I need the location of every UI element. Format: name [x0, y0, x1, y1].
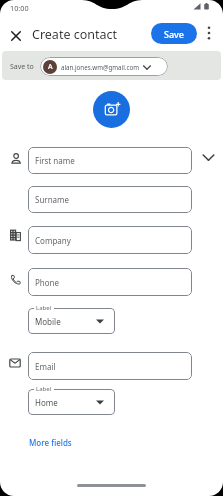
button[interactable]: Mobile	[28, 308, 115, 334]
staticText: Create contact	[32, 26, 118, 43]
staticText: Save	[164, 28, 185, 40]
button[interactable]: Company	[28, 226, 192, 254]
button[interactable]	[203, 25, 215, 41]
button[interactable]: Phone	[28, 268, 192, 296]
button[interactable]: More fields	[29, 437, 72, 448]
button[interactable]: Surname	[28, 186, 192, 213]
staticText: Phone	[35, 277, 60, 288]
staticText: Home	[35, 397, 58, 408]
staticText: A	[48, 62, 53, 72]
staticText: Mobile	[35, 316, 61, 327]
button[interactable]: Save	[151, 23, 197, 44]
staticText: Company	[35, 235, 71, 246]
button[interactable]: First name	[28, 147, 192, 174]
staticText: Surname	[35, 194, 70, 205]
staticText: Label	[36, 304, 52, 312]
staticText: 10:00	[10, 3, 29, 13]
button[interactable]	[7, 27, 25, 45]
button[interactable]: Email	[28, 352, 192, 380]
staticText: Save to	[10, 62, 34, 72]
staticText: Label	[36, 385, 52, 393]
staticText: First name	[35, 155, 75, 166]
staticText: Email	[35, 361, 56, 372]
button[interactable]: A	[40, 57, 168, 76]
staticText: alan.jones.wm@gmail.com	[61, 63, 139, 71]
button[interactable]	[93, 91, 130, 128]
button[interactable]: Home	[28, 389, 115, 415]
